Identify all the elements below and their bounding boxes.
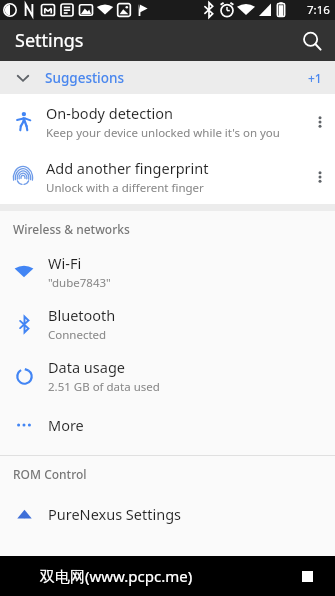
staticText: "dube7843" [48, 275, 111, 291]
button[interactable]: More options [305, 149, 335, 204]
staticText: Unlock with a different finger [46, 180, 204, 196]
button[interactable]: On-body detection [0, 94, 335, 149]
staticText: ROM Control [13, 466, 87, 482]
staticText: Wi-Fi [48, 253, 82, 273]
staticText: Add another fingerprint [46, 158, 209, 178]
staticText: PureNexus Settings [48, 504, 182, 524]
staticText: Wireless & networks [13, 221, 130, 237]
button[interactable]: More options [305, 94, 335, 149]
staticText: Bluetooth [48, 305, 116, 325]
staticText: 双电网(www.pcpc.me) [40, 566, 193, 586]
staticText: Settings [15, 28, 84, 53]
button[interactable]: PureNexus Settings [0, 491, 335, 537]
staticText: 2.51 GB of data used [48, 379, 160, 395]
staticText: 7:16 [307, 2, 330, 18]
staticText: More [48, 415, 84, 435]
button[interactable]: Suggestions [0, 61, 335, 94]
button[interactable]: Wi-Fi [0, 246, 335, 298]
button[interactable]: Search [294, 23, 330, 59]
staticText: Suggestions [45, 69, 125, 87]
staticText: Data usage [48, 357, 125, 377]
button[interactable]: Data usage [0, 350, 335, 402]
button[interactable]: Bluetooth [0, 298, 335, 350]
button[interactable]: More [0, 402, 335, 448]
button[interactable]: Add another fingerprint [0, 149, 335, 204]
staticText: +1 [308, 70, 322, 86]
staticText: On-body detection [46, 103, 173, 123]
staticText: Connected [48, 327, 107, 343]
staticText: Keep your device unlocked while it's on … [46, 125, 280, 141]
